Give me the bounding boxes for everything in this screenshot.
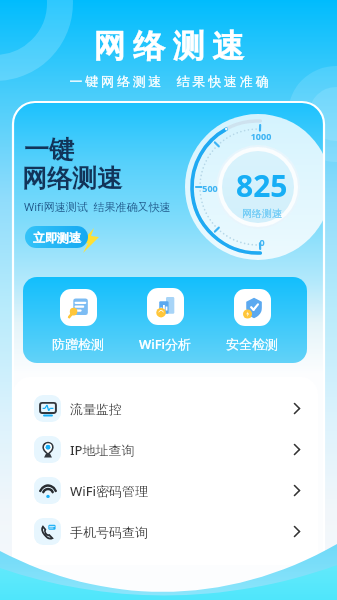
staticText: 防蹭检测	[52, 336, 104, 352]
button[interactable]: 安全检测	[220, 285, 284, 356]
button[interactable]: 立即测速	[25, 226, 88, 248]
staticText: 立即测速	[33, 230, 81, 245]
staticText: 网络测速	[4, 26, 337, 66]
staticText: Wifi网速测试 结果准确又快速	[24, 199, 171, 214]
staticText: 流量监控	[70, 401, 122, 417]
staticText: 825	[236, 165, 288, 206]
button[interactable]: WiFi分析	[133, 284, 198, 357]
staticText: 一键网络测速 结果快速准确	[2, 72, 337, 90]
staticText: 网络测速	[22, 163, 122, 194]
staticText: 1000	[241, 130, 281, 142]
staticText: WiFi密码管理	[70, 482, 149, 500]
button[interactable]: WiFi密码管理	[13, 470, 318, 511]
button[interactable]: 手机号码查询	[13, 511, 318, 552]
staticText: 安全检测	[226, 336, 278, 352]
staticText: 一键	[24, 134, 74, 165]
staticText: IP地址查询	[70, 441, 135, 459]
staticText: 网络测速	[242, 207, 282, 220]
staticText: 500	[195, 182, 225, 194]
button[interactable]: 流量监控	[13, 388, 318, 429]
staticText: 0	[247, 236, 277, 248]
button[interactable]: 防蹭检测	[46, 285, 110, 356]
button[interactable]: IP地址查询	[13, 429, 318, 470]
staticText: WiFi分析	[139, 335, 192, 353]
staticText: 手机号码查询	[70, 524, 148, 540]
